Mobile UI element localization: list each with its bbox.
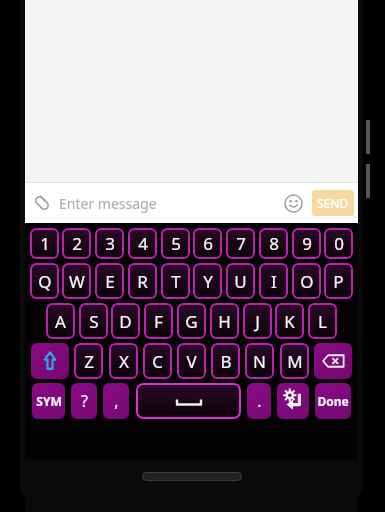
- staticText: B: [220, 350, 232, 373]
- button[interactable]: S: [79, 303, 108, 339]
- button[interactable]: R: [128, 263, 157, 299]
- staticText: I: [271, 270, 277, 293]
- staticText: ?: [81, 390, 88, 412]
- staticText: 8: [269, 232, 279, 255]
- button[interactable]: Q: [30, 263, 59, 299]
- staticText: 3: [105, 232, 115, 255]
- button[interactable]: A: [46, 303, 75, 339]
- button[interactable]: Done: [315, 383, 351, 419]
- staticText: H: [218, 310, 231, 333]
- staticText: E: [105, 270, 115, 293]
- staticText: K: [284, 310, 295, 333]
- button[interactable]: L: [308, 303, 337, 339]
- staticText: M: [287, 350, 303, 373]
- button[interactable]: ?: [71, 383, 97, 419]
- staticText: Y: [203, 270, 213, 293]
- button[interactable]: E: [95, 263, 124, 299]
- staticText: N: [253, 350, 266, 373]
- staticText: 5: [171, 232, 181, 255]
- button[interactable]: 1: [30, 228, 59, 259]
- staticText: V: [186, 350, 197, 373]
- staticText: 9: [302, 232, 312, 255]
- button[interactable]: 0: [324, 228, 353, 259]
- staticText: Z: [84, 350, 94, 373]
- button[interactable]: 6: [193, 228, 222, 259]
- button[interactable]: D: [111, 303, 140, 339]
- staticText: U: [234, 270, 247, 293]
- staticText: Q: [38, 270, 52, 293]
- staticText: G: [185, 310, 198, 333]
- button[interactable]: O: [292, 263, 321, 299]
- button[interactable]: T: [161, 263, 190, 299]
- button[interactable]: Attach: [25, 186, 59, 220]
- staticText: Enter message: [59, 194, 276, 213]
- staticText: 4: [138, 232, 148, 255]
- staticText: S: [89, 310, 99, 333]
- staticText: J: [255, 310, 260, 333]
- staticText: 6: [203, 232, 213, 255]
- button[interactable]: 2: [62, 228, 91, 259]
- button[interactable]: SYM: [32, 383, 65, 419]
- button[interactable]: .: [247, 383, 271, 419]
- staticText: .: [257, 390, 262, 412]
- staticText: R: [137, 270, 148, 293]
- staticText: X: [119, 350, 129, 373]
- staticText: T: [171, 270, 181, 293]
- button[interactable]: K: [275, 303, 304, 339]
- button[interactable]: Space: [136, 383, 241, 419]
- button[interactable]: B: [211, 343, 240, 379]
- staticText: L: [318, 310, 327, 333]
- button[interactable]: 7: [226, 228, 255, 259]
- button[interactable]: Enter: [277, 383, 309, 419]
- button[interactable]: 8: [259, 228, 288, 259]
- staticText: 0: [334, 232, 344, 255]
- staticText: 1: [40, 232, 50, 255]
- staticText: A: [55, 310, 66, 333]
- button[interactable]: V: [177, 343, 206, 379]
- button[interactable]: N: [245, 343, 274, 379]
- button[interactable]: Y: [193, 263, 222, 299]
- staticText: C: [152, 350, 163, 373]
- staticText: F: [154, 310, 163, 333]
- button[interactable]: C: [143, 343, 172, 379]
- staticText: 2: [72, 232, 82, 255]
- button[interactable]: I: [259, 263, 288, 299]
- staticText: SYM: [36, 393, 62, 409]
- button[interactable]: P: [324, 263, 353, 299]
- staticText: O: [300, 270, 314, 293]
- button[interactable]: F: [144, 303, 173, 339]
- button[interactable]: 5: [161, 228, 190, 259]
- button[interactable]: Shift: [31, 343, 69, 379]
- button[interactable]: Z: [74, 343, 103, 379]
- button[interactable]: Emoji: [276, 186, 310, 220]
- button[interactable]: M: [280, 343, 309, 379]
- staticText: W: [69, 270, 85, 293]
- staticText: SEND: [317, 195, 349, 211]
- button[interactable]: H: [210, 303, 239, 339]
- staticText: Done: [317, 393, 349, 409]
- staticText: P: [333, 270, 344, 293]
- staticText: D: [119, 310, 132, 333]
- button[interactable]: X: [109, 343, 138, 379]
- staticText: 7: [236, 232, 246, 255]
- button[interactable]: ,: [103, 383, 129, 419]
- button[interactable]: G: [177, 303, 206, 339]
- button[interactable]: U: [226, 263, 255, 299]
- button[interactable]: J: [243, 303, 272, 339]
- button[interactable]: Backspace: [314, 343, 352, 379]
- button[interactable]: 4: [128, 228, 157, 259]
- staticText: ,: [114, 390, 119, 412]
- button[interactable]: 3: [95, 228, 124, 259]
- button[interactable]: SEND: [312, 190, 354, 216]
- button[interactable]: W: [62, 263, 91, 299]
- button[interactable]: 9: [292, 228, 321, 259]
